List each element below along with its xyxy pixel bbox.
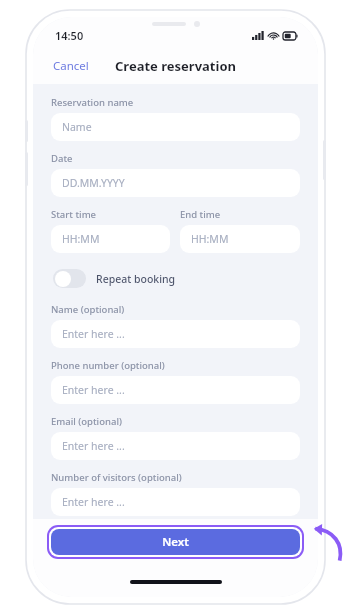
staticText: Create reservation <box>115 57 236 75</box>
staticText: Email (optional) <box>51 415 122 428</box>
staticText: HH:MM <box>191 232 229 246</box>
staticText: Cancel <box>53 58 89 74</box>
staticText: Next <box>162 534 189 550</box>
button[interactable]: Enter here ... <box>51 432 300 460</box>
staticText: Date <box>51 152 73 165</box>
staticText: Reservation name <box>51 96 134 109</box>
staticText: HH:MM <box>62 232 100 246</box>
button[interactable]: Enter here ... <box>51 320 300 348</box>
staticText: 14:50 <box>55 28 84 43</box>
button[interactable]: Next <box>51 529 300 555</box>
staticText: Enter here ... <box>62 439 125 453</box>
staticText: Enter here ... <box>62 327 125 341</box>
staticText: Phone number (optional) <box>51 359 165 372</box>
button[interactable]: HH:MM <box>51 225 170 253</box>
button[interactable]: Repeat booking <box>51 267 178 290</box>
button[interactable]: HH:MM <box>180 225 300 253</box>
button[interactable]: Name <box>51 113 300 141</box>
staticText: End time <box>180 208 221 221</box>
staticText: Name <box>62 120 92 134</box>
staticText: DD.MM.YYYY <box>62 176 125 190</box>
staticText: Number of visitors (optional) <box>51 471 182 484</box>
staticText: Enter here ... <box>62 495 125 509</box>
button[interactable]: DD.MM.YYYY <box>51 169 300 197</box>
staticText: Repeat booking <box>96 272 176 286</box>
button[interactable]: Enter here ... <box>51 488 300 516</box>
staticText: Enter here ... <box>62 383 125 397</box>
staticText: Name (optional) <box>51 303 125 316</box>
staticText: Start time <box>51 208 97 221</box>
button[interactable]: Enter here ... <box>51 376 300 404</box>
button[interactable]: Cancel <box>45 53 97 79</box>
